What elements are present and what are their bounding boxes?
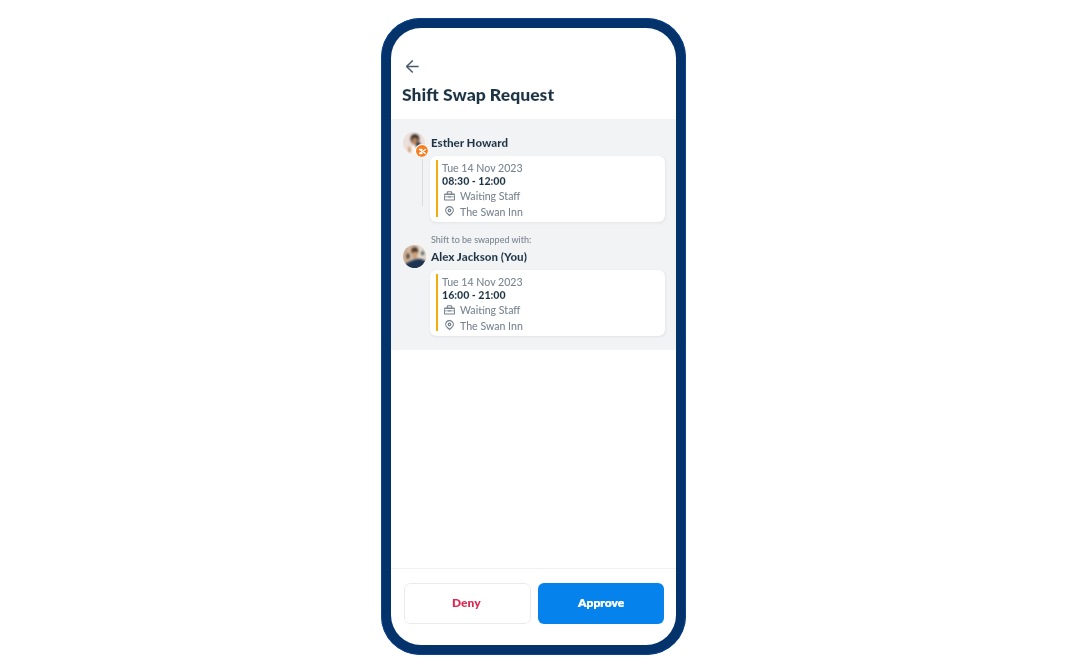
- staticText: Tue 14 Nov 2023: [442, 162, 523, 175]
- staticText: 16:00 - 21:00: [442, 289, 506, 302]
- staticText: Deny: [452, 595, 481, 609]
- button[interactable]: Deny: [404, 583, 531, 624]
- staticText: Tue 14 Nov 2023: [442, 276, 523, 289]
- staticText: Esther Howard: [431, 136, 509, 150]
- button[interactable]: Back: [399, 53, 426, 80]
- staticText: Waiting Staff: [460, 304, 521, 317]
- button[interactable]: Tue 14 Nov 2023: [430, 270, 665, 336]
- staticText: The Swan Inn: [460, 320, 523, 333]
- button[interactable]: Approve: [538, 583, 664, 624]
- staticText: Alex Jackson (You): [431, 250, 527, 264]
- staticText: Approve: [578, 595, 625, 609]
- staticText: Shift Swap Request: [402, 84, 555, 105]
- staticText: 08:30 - 12:00: [442, 175, 506, 188]
- staticText: Waiting Staff: [460, 190, 521, 203]
- button[interactable]: Tue 14 Nov 2023: [430, 156, 665, 222]
- staticText: Shift to be swapped with:: [431, 234, 532, 245]
- staticText: The Swan Inn: [460, 206, 523, 219]
